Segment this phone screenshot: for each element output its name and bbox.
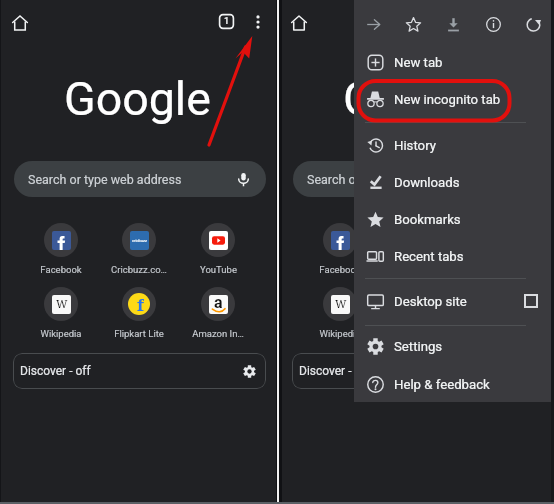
button[interactable]: f (383, 286, 453, 339)
staticText: Google (64, 72, 211, 126)
button[interactable]: New incognito tab (354, 81, 554, 117)
button[interactable]: Search or type web address (293, 161, 545, 197)
button[interactable]: Help & feedback (354, 366, 554, 402)
button[interactable]: Bookmark this page (396, 7, 430, 41)
button[interactable]: YouTube (183, 222, 253, 275)
button[interactable]: Open tabs (217, 12, 236, 31)
staticText: Facebook (40, 264, 82, 275)
button[interactable]: YouTube (462, 222, 532, 275)
button[interactable]: cricbuzz (383, 222, 453, 275)
button[interactable]: cricbuzz (104, 222, 174, 275)
staticText: Google (343, 72, 490, 126)
button[interactable]: Discover settings (238, 360, 260, 382)
staticText: Settings (394, 339, 443, 354)
staticText: Discover - off (20, 364, 91, 378)
button[interactable]: f (104, 286, 174, 339)
staticText: History (394, 138, 436, 153)
button[interactable]: Home (9, 12, 30, 33)
button[interactable]: Discover - off (13, 353, 266, 389)
button[interactable]: Settings (354, 328, 554, 364)
staticText: f (416, 293, 423, 315)
button[interactable]: Page info (476, 7, 510, 41)
button[interactable]: Desktop site (354, 283, 554, 319)
staticText: Search or type web address (307, 172, 461, 187)
staticText: f (137, 293, 144, 315)
staticText: Downloads (394, 175, 460, 190)
staticText: cricbuzz (132, 238, 147, 243)
button[interactable]: History (354, 127, 554, 163)
staticText: W (335, 296, 347, 311)
button[interactable]: W (26, 286, 96, 339)
staticText: Wikipedia (40, 328, 82, 339)
button[interactable]: Open tabs (496, 12, 515, 31)
staticText: New tab (394, 55, 443, 70)
staticText: Facebook (319, 264, 361, 275)
button[interactable]: Discover - off (292, 353, 545, 389)
staticText: Recent tabs (394, 249, 464, 264)
staticText: YouTube (200, 264, 237, 275)
staticText: a (214, 295, 223, 312)
button[interactable]: a (462, 286, 532, 339)
staticText: 1 (224, 16, 230, 27)
button[interactable]: Downloads (354, 164, 554, 200)
button[interactable]: Bookmarks (354, 201, 554, 237)
button[interactable]: W (305, 286, 375, 339)
button[interactable]: More options (527, 12, 546, 31)
staticText: Wikipedia (319, 328, 361, 339)
button[interactable]: New tab (354, 44, 554, 80)
button[interactable]: Facebook (26, 222, 96, 275)
button[interactable]: Facebook (305, 222, 375, 275)
button[interactable]: a (183, 286, 253, 339)
staticText: New incognito tab (394, 92, 501, 107)
button[interactable]: Recent tabs (354, 238, 554, 274)
staticText: Desktop site (394, 294, 467, 309)
button[interactable]: Download page (436, 7, 470, 41)
button[interactable]: Search or type web address (14, 161, 266, 197)
button[interactable]: Reload (516, 7, 550, 41)
staticText: Bookmarks (394, 212, 461, 227)
staticText: Flipkart Lite (114, 328, 164, 339)
button[interactable]: More options (248, 12, 267, 31)
staticText: Discover - off (299, 364, 370, 378)
staticText: Amazon In… (192, 328, 244, 339)
staticText: Cricbuzz.co… (111, 264, 167, 275)
button[interactable]: Forward (356, 7, 390, 41)
staticText: Help & feedback (394, 377, 490, 392)
button[interactable]: Home (288, 12, 309, 33)
staticText: Search or type web address (28, 172, 182, 187)
staticText: W (56, 296, 68, 311)
